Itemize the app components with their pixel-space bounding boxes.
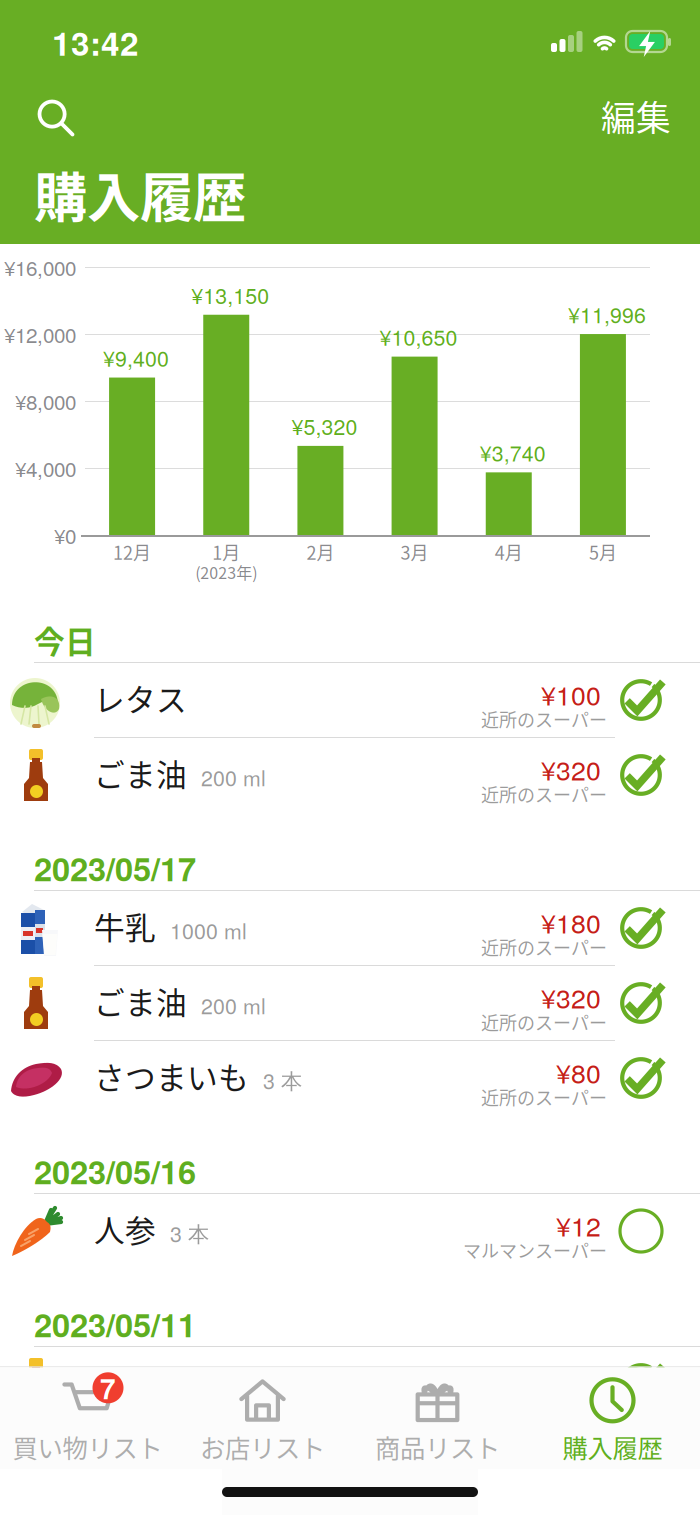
staticText: 13:42 [52,18,139,66]
staticText: ¥11,996 [568,299,646,329]
staticText: ¥100 [541,675,601,713]
staticText: 近所のスーパー [481,1390,607,1416]
staticText: 近所のスーパー [481,1084,607,1110]
staticText: さつまいも [94,1054,249,1098]
staticText: 4月 [495,539,523,565]
staticText: ¥10,650 [380,321,458,352]
staticText: ¥12 [556,1206,601,1244]
button[interactable]: 牛乳 [0,891,700,965]
staticText: ¥13,150 [191,279,269,310]
staticText: 200 ml [201,762,266,792]
button[interactable]: ごま油 [0,1347,700,1421]
staticText: 3 本 [263,1065,302,1095]
staticText: 200 ml [201,1371,266,1401]
staticText: ¥320 [541,1359,601,1397]
staticText: 1000 ml [170,915,247,945]
staticText: 12月 [113,539,151,565]
button[interactable]: 商品リスト [350,1367,525,1469]
staticText: 買い物リスト [12,1428,162,1465]
staticText: 近所のスーパー [481,1009,607,1035]
staticText: 7 [100,1368,116,1408]
button[interactable]: お店リスト [175,1367,350,1469]
staticText: 購入履歴 [562,1428,662,1465]
staticText: 200 ml [201,990,266,1020]
button[interactable]: ごま油 [0,966,700,1040]
button[interactable]: 人参 [0,1194,700,1268]
staticText: 人参 [94,1207,156,1251]
button[interactable]: 購入履歴 [525,1367,700,1469]
staticText: 5月 [589,539,617,565]
staticText: 2023/05/17 [34,845,196,891]
staticText: 牛乳 [94,904,156,948]
staticText: マルマンスーパー [463,1237,607,1263]
staticText: 2月 [306,539,334,565]
staticText: 2023/05/16 [34,1148,196,1194]
staticText: ¥0 [54,520,76,550]
staticText: ¥80 [556,1053,601,1091]
staticText: 近所のスーパー [481,781,607,807]
staticText: 近所のスーパー [481,706,607,732]
staticText: お店リスト [200,1428,325,1465]
button[interactable]: さつまいも [0,1041,700,1115]
staticText: ¥5,320 [291,411,357,441]
staticText: 今日 [34,618,96,662]
staticText: ¥320 [541,750,601,788]
staticText: 1月 [212,539,240,565]
button[interactable]: 編集 [586,92,686,140]
staticText: ¥9,400 [103,342,169,373]
staticText: 購入履歴 [34,155,246,233]
staticText: 3 本 [170,1218,209,1248]
staticText: ¥320 [541,978,601,1016]
button[interactable]: レタス [0,663,700,737]
button[interactable]: ごま油 [0,738,700,812]
staticText: レタス [94,676,187,720]
staticText: ¥12,000 [4,319,76,349]
staticText: ¥3,740 [480,437,546,468]
staticText: 編集 [601,91,671,141]
button[interactable]: 7 [0,1367,175,1469]
staticText: ごま油 [94,751,187,795]
staticText: ごま油 [94,1360,187,1404]
button[interactable]: Search [25,87,87,149]
staticText: 2023/05/11 [34,1301,196,1347]
staticText: ごま油 [94,979,187,1023]
staticText: 近所のスーパー [481,934,607,960]
staticText: ¥16,000 [4,252,76,282]
staticText: ¥180 [541,903,601,941]
staticText: ¥4,000 [15,453,76,483]
staticText: 商品リスト [375,1428,500,1465]
staticText: (2023年) [195,560,257,584]
staticText: ¥8,000 [15,386,76,416]
staticText: 3月 [401,539,429,565]
